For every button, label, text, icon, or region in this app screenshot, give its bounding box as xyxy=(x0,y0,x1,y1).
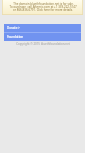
button[interactable]: Foundation xyxy=(4,33,81,41)
staticText: Copyright © 2015 bluethfoundation.net xyxy=(16,42,70,46)
button[interactable]: The domain bluethfoundation.net is for s… xyxy=(2,0,83,15)
staticText: Donate > xyxy=(7,26,20,30)
staticText: or 866-836-6791. Click here for more det… xyxy=(13,8,73,11)
button[interactable]: Donate > xyxy=(4,24,81,32)
staticText: Foundation xyxy=(7,35,24,39)
staticText: The domain bluethfoundation.net is for s… xyxy=(13,2,74,5)
staticText: To purchase, call Afternic.com at +1 339… xyxy=(9,5,77,8)
